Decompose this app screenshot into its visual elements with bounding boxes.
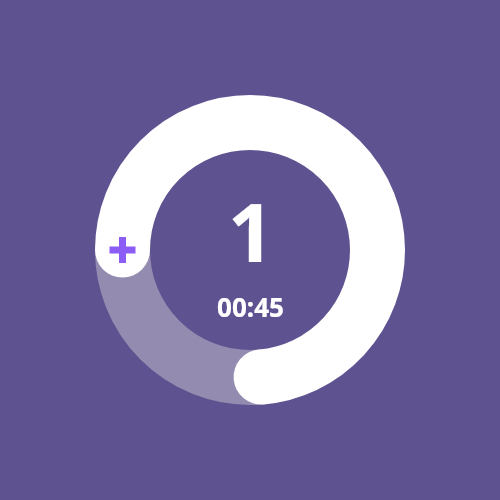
other: Add set <box>184 184 316 316</box>
button[interactable]: Add set <box>95 95 405 405</box>
staticText: 00:45 <box>217 289 284 324</box>
staticText: 1 <box>228 176 274 285</box>
